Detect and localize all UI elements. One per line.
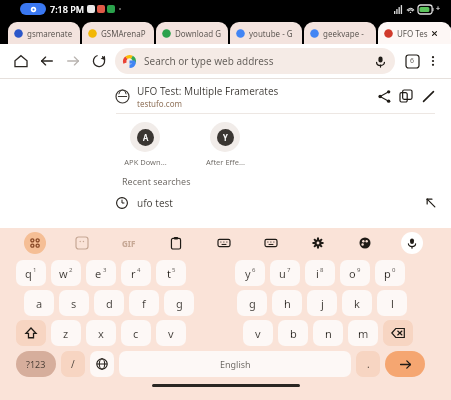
staticText: 0 [392, 266, 396, 274]
button[interactable]: h [272, 290, 302, 316]
button[interactable]: UFO Tes [378, 22, 451, 44]
button[interactable]: Go [385, 351, 425, 377]
staticText: UFO Tes [397, 28, 428, 39]
button[interactable]: Voice input [401, 232, 423, 254]
button[interactable]: u [270, 260, 300, 286]
button[interactable]: GSMArenaP [82, 22, 154, 44]
button[interactable]: UFO Test: Multiple Framerates [0, 79, 451, 113]
button[interactable]: y [235, 260, 265, 286]
button[interactable]: l [377, 290, 407, 316]
button[interactable]: Clipboard [165, 232, 187, 254]
button[interactable]: s [59, 290, 89, 316]
button[interactable]: q [16, 260, 46, 286]
button[interactable]: a [24, 290, 54, 316]
button[interactable]: Stickers [71, 232, 93, 254]
button[interactable]: b [278, 320, 308, 346]
button[interactable]: j [307, 290, 337, 316]
staticText: d [106, 296, 113, 311]
button[interactable]: Themes [354, 232, 376, 254]
button[interactable]: k [342, 290, 372, 316]
button[interactable]: Copy [395, 85, 417, 107]
button[interactable]: Insert query [425, 197, 437, 209]
staticText: r [131, 266, 136, 281]
staticText: 5 [172, 266, 176, 274]
button[interactable]: More options [423, 51, 443, 71]
staticText: APK Down... [124, 157, 167, 167]
button[interactable]: Settings [307, 232, 329, 254]
staticText: p [384, 266, 391, 281]
button[interactable]: Search or type web address [115, 48, 395, 74]
staticText: GSMArenaP [101, 28, 146, 39]
button[interactable]: n [313, 320, 343, 346]
staticText: UFO Test: Multiple Framerates [137, 84, 279, 98]
button[interactable]: ?123 [16, 351, 56, 377]
button[interactable]: g [237, 290, 267, 316]
button[interactable]: Edit [417, 85, 439, 107]
button[interactable]: Tab count 6 [401, 50, 423, 72]
button[interactable]: Shift [16, 320, 46, 346]
button[interactable]: gsmarenate [8, 22, 80, 44]
button[interactable]: / [61, 351, 85, 377]
button[interactable]: Share [373, 85, 395, 107]
button[interactable]: Resize [260, 232, 282, 254]
button[interactable]: r [121, 260, 151, 286]
button[interactable]: e [86, 260, 116, 286]
staticText: 7 [287, 266, 291, 274]
button[interactable]: Change language [90, 351, 114, 377]
button[interactable]: t [156, 260, 186, 286]
button[interactable]: ufo test [0, 187, 451, 219]
staticText: o [349, 266, 356, 281]
button[interactable]: f [129, 290, 159, 316]
button[interactable]: Voice search [374, 55, 387, 68]
button[interactable]: i [305, 260, 335, 286]
staticText: Search or type web address [144, 54, 274, 68]
button[interactable]: English [119, 351, 351, 377]
button[interactable]: Close tab [430, 29, 439, 38]
staticText: g [176, 296, 183, 311]
button[interactable]: Back [34, 48, 60, 74]
staticText: h [284, 296, 291, 311]
button[interactable]: o [340, 260, 370, 286]
staticText: w [59, 266, 68, 281]
staticText: u [279, 266, 286, 281]
button[interactable]: d [94, 290, 124, 316]
button[interactable]: Y [196, 122, 254, 167]
staticText: y [245, 266, 251, 281]
staticText: f [142, 296, 146, 311]
staticText: x [98, 326, 104, 341]
button[interactable]: v [156, 320, 186, 346]
button[interactable]: . [356, 351, 380, 377]
staticText: t [167, 266, 171, 281]
button[interactable]: z [51, 320, 81, 346]
button[interactable]: Download G [156, 22, 228, 44]
staticText: i [316, 266, 319, 281]
button[interactable]: youtube - G [230, 22, 302, 44]
button[interactable]: p [375, 260, 405, 286]
button[interactable]: Backspace [383, 320, 413, 346]
button[interactable]: A [116, 122, 174, 167]
button[interactable]: Forward [60, 48, 86, 74]
button[interactable]: GIF [118, 232, 140, 254]
staticText: s [71, 296, 77, 311]
button[interactable]: c [121, 320, 151, 346]
button[interactable]: m [348, 320, 378, 346]
staticText: 8 [320, 266, 324, 274]
button[interactable]: One handed [213, 232, 235, 254]
button[interactable]: g [164, 290, 194, 316]
button[interactable]: Reload [86, 48, 112, 74]
staticText: ?123 [26, 358, 46, 370]
button[interactable]: Keyboard modes [24, 232, 46, 254]
button[interactable]: Home [8, 48, 34, 74]
button[interactable]: geekvape - [304, 22, 376, 44]
staticText: 6 [252, 266, 256, 274]
staticText: ufo test [137, 196, 173, 210]
staticText: After Effe... [206, 157, 245, 167]
staticText: z [63, 326, 69, 341]
staticText: + [436, 4, 441, 14]
staticText: . [367, 357, 370, 371]
staticText: Recent searches [122, 175, 191, 187]
button[interactable]: v [243, 320, 273, 346]
button[interactable]: w [51, 260, 81, 286]
button[interactable]: x [86, 320, 116, 346]
staticText: Y [223, 132, 228, 143]
